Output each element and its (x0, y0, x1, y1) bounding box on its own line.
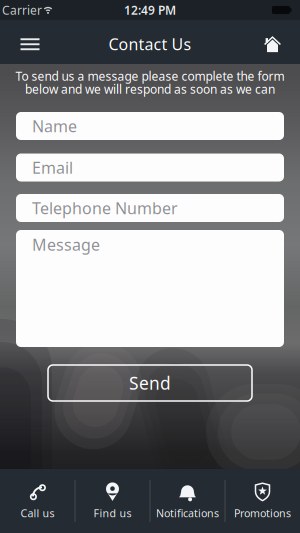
staticText: Notifications (156, 506, 219, 520)
button[interactable]: Notifications (150, 469, 225, 533)
staticText: To send us a message please complete the… (15, 68, 284, 84)
staticText: Carrier (2, 2, 42, 18)
button[interactable]: Name (16, 112, 284, 140)
button[interactable]: Email (16, 153, 284, 181)
button[interactable]: Home (255, 27, 289, 61)
staticText: Email (32, 157, 73, 178)
staticText: Promotions (234, 506, 291, 520)
button[interactable]: Call us (0, 469, 75, 533)
staticText: Contact Us (108, 33, 191, 55)
button[interactable]: Menu (12, 25, 48, 61)
button[interactable]: Send (48, 365, 252, 401)
staticText: 12:49 PM (124, 2, 176, 18)
button[interactable]: Find us (75, 469, 150, 533)
staticText: below and we will respond as soon as we … (25, 81, 275, 97)
staticText: Name (32, 115, 77, 137)
staticText: Find us (93, 506, 131, 520)
button[interactable]: Telephone Number (16, 194, 284, 222)
button[interactable]: Message (16, 230, 284, 347)
staticText: Telephone Number (32, 197, 178, 219)
staticText: Message (32, 234, 100, 255)
staticText: Call us (20, 506, 54, 520)
staticText: Send (129, 371, 171, 394)
button[interactable]: Promotions (225, 469, 300, 533)
